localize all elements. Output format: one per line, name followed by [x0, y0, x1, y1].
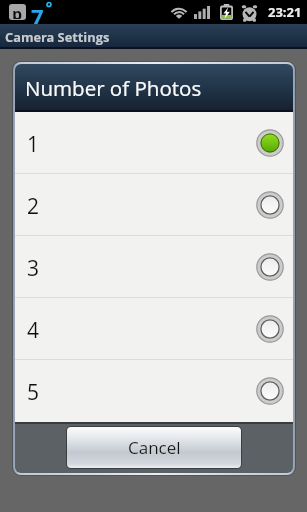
staticText: 23:21 — [268, 3, 302, 21]
staticText: Camera Settings — [5, 28, 110, 45]
button[interactable]: 3 — [15, 236, 293, 298]
staticText: 4 — [27, 316, 40, 345]
staticText: 5 — [27, 378, 40, 407]
button[interactable]: 1 — [15, 112, 293, 174]
staticText: 1 — [27, 130, 40, 159]
button[interactable]: 5 — [15, 360, 293, 422]
staticText: 3 — [27, 254, 40, 283]
staticText: p — [12, 4, 23, 19]
staticText: 2 — [27, 192, 40, 221]
button[interactable]: Cancel — [67, 427, 241, 468]
staticText: 7 — [31, 1, 44, 25]
button[interactable]: 4 — [15, 298, 293, 360]
button[interactable]: 2 — [15, 174, 293, 236]
staticText: Cancel — [128, 436, 181, 459]
staticText: Number of Photos — [25, 74, 202, 102]
